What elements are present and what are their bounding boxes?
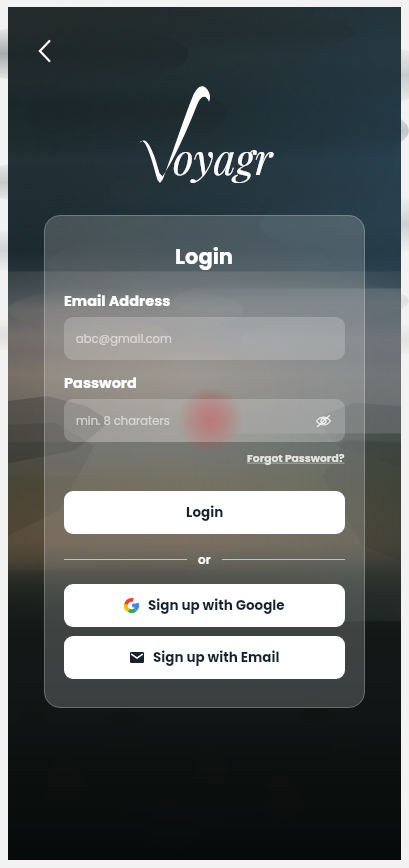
staticText: Email Address xyxy=(64,291,171,311)
button[interactable]: Login xyxy=(64,491,345,534)
staticText: Login xyxy=(175,242,234,271)
button[interactable]: abc@gmail.com xyxy=(64,317,345,360)
staticText: or xyxy=(198,551,211,568)
staticText: min. 8 charaters xyxy=(76,413,170,429)
staticText: Password xyxy=(64,373,137,393)
staticText: oyagr xyxy=(173,130,273,186)
button[interactable]: Sign up with Google xyxy=(64,584,345,627)
staticText: abc@gmail.com xyxy=(76,331,172,347)
button[interactable]: Back xyxy=(28,35,60,67)
button[interactable]: Show password xyxy=(313,411,333,431)
staticText: Forgot Password? xyxy=(247,451,345,466)
button[interactable]: Forgot Password? xyxy=(247,451,345,466)
staticText: Sign up with Google xyxy=(148,596,285,615)
button[interactable]: min. 8 charaters xyxy=(64,399,345,442)
staticText: Login xyxy=(186,503,224,522)
staticText: Sign up with Email xyxy=(153,648,280,667)
button[interactable]: Sign up with Email xyxy=(64,636,345,679)
